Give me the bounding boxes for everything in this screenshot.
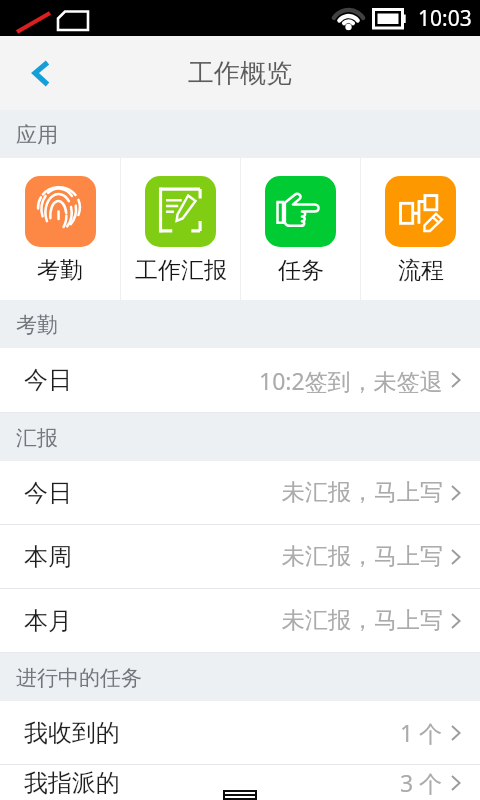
staticText: 未汇报，马上写 (282, 606, 443, 635)
staticText: 3 个 (400, 767, 443, 798)
staticText: 汇报 (16, 425, 58, 451)
button[interactable]: Menu (223, 790, 257, 800)
staticText: 应用 (16, 122, 58, 148)
staticText: 本月 (24, 606, 72, 636)
staticText: 我指派的 (24, 768, 120, 798)
staticText: 1 个 (400, 717, 443, 748)
staticText: 任务 (278, 256, 324, 285)
button[interactable]: 我指派的 (0, 765, 480, 800)
button[interactable]: 考勤 (0, 158, 120, 300)
button[interactable]: 今日 (0, 348, 480, 412)
staticText: 今日 (24, 478, 72, 508)
staticText: 进行中的任务 (16, 665, 142, 691)
staticText: 本周 (24, 542, 72, 572)
staticText: 流程 (398, 256, 444, 285)
staticText: 工作汇报 (135, 256, 227, 285)
staticText: 考勤 (37, 256, 83, 285)
button[interactable]: Back (0, 36, 80, 110)
button[interactable]: 工作汇报 (121, 158, 240, 300)
button[interactable]: 本周 (0, 525, 480, 588)
button[interactable]: 今日 (0, 461, 480, 524)
staticText: 10:03 (418, 4, 472, 33)
button[interactable]: 本月 (0, 589, 480, 652)
staticText: 未汇报，马上写 (282, 542, 443, 571)
button[interactable]: 流程 (361, 158, 480, 300)
button[interactable]: 任务 (241, 158, 360, 300)
staticText: 考勤 (16, 312, 58, 338)
staticText: 10:2签到，未签退 (259, 365, 443, 396)
staticText: 我收到的 (24, 718, 120, 748)
staticText: 工作概览 (188, 57, 292, 90)
staticText: 今日 (24, 365, 72, 395)
staticText: 未汇报，马上写 (282, 478, 443, 507)
button[interactable]: 我收到的 (0, 701, 480, 764)
